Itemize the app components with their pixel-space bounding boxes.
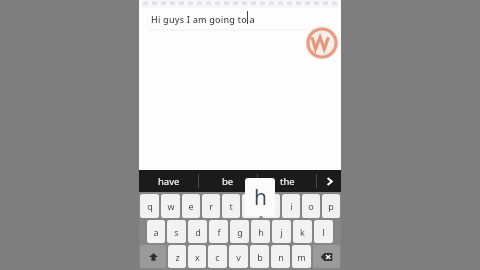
button[interactable]: b — [250, 245, 269, 268]
button[interactable]: w — [161, 194, 180, 218]
button[interactable]: g — [230, 220, 249, 243]
button[interactable]: p — [322, 194, 340, 218]
button[interactable]: the — [258, 170, 316, 192]
button[interactable]: Backspace — [313, 245, 340, 268]
staticText: m — [297, 251, 306, 263]
staticText: g — [237, 226, 243, 238]
button[interactable]: i — [282, 194, 300, 218]
button[interactable]: u — [262, 194, 280, 218]
button[interactable]: a — [147, 220, 165, 243]
button[interactable]: x — [188, 245, 206, 268]
staticText: x — [195, 251, 200, 263]
button[interactable]: Shift — [140, 245, 166, 268]
staticText: Hi guys I am going to a — [151, 13, 255, 25]
staticText: have — [158, 175, 180, 188]
button[interactable]: j — [272, 220, 291, 243]
staticText: a — [153, 226, 159, 238]
button[interactable]: be — [199, 170, 257, 192]
button[interactable]: z — [168, 245, 186, 268]
staticText: t — [229, 200, 233, 212]
staticText: f — [217, 226, 221, 238]
button[interactable]: c — [208, 245, 227, 268]
staticText: e — [188, 200, 194, 212]
other: App watermark — [305, 26, 339, 60]
staticText: h — [258, 226, 264, 238]
button[interactable]: f — [209, 220, 228, 243]
staticText: r — [209, 200, 213, 212]
button[interactable]: More suggestions — [317, 170, 341, 192]
button[interactable]: have — [139, 170, 198, 192]
staticText: c — [215, 251, 220, 263]
button[interactable]: s — [167, 220, 186, 243]
button[interactable]: h — [245, 178, 275, 216]
staticText: w — [167, 200, 175, 212]
button[interactable]: q — [140, 194, 159, 218]
button[interactable]: t — [222, 194, 240, 218]
button[interactable]: e — [182, 194, 200, 218]
staticText: o — [308, 200, 314, 212]
staticText: j — [280, 226, 283, 238]
staticText: s — [174, 226, 179, 238]
staticText: z — [175, 251, 180, 263]
staticText: i — [290, 200, 293, 212]
button[interactable]: o — [302, 194, 320, 218]
staticText: l — [322, 226, 325, 238]
button[interactable]: l — [314, 220, 333, 243]
button[interactable]: h — [251, 220, 270, 243]
staticText: the — [280, 175, 295, 188]
button[interactable]: y — [242, 194, 260, 218]
staticText: d — [195, 226, 201, 238]
button[interactable]: m — [292, 245, 311, 268]
button[interactable]: Hi guys I am going to a — [139, 8, 341, 170]
button[interactable]: d — [188, 220, 207, 243]
staticText: n — [278, 251, 284, 263]
staticText: b — [257, 251, 263, 263]
button[interactable]: k — [293, 220, 312, 243]
staticText: k — [300, 226, 305, 238]
staticText: v — [236, 251, 241, 263]
staticText: q — [147, 200, 153, 212]
staticText: be — [222, 175, 234, 188]
staticText: p — [328, 200, 334, 212]
button[interactable]: v — [229, 245, 248, 268]
button[interactable]: n — [271, 245, 290, 268]
button[interactable]: r — [202, 194, 220, 218]
staticText: h — [254, 183, 267, 212]
